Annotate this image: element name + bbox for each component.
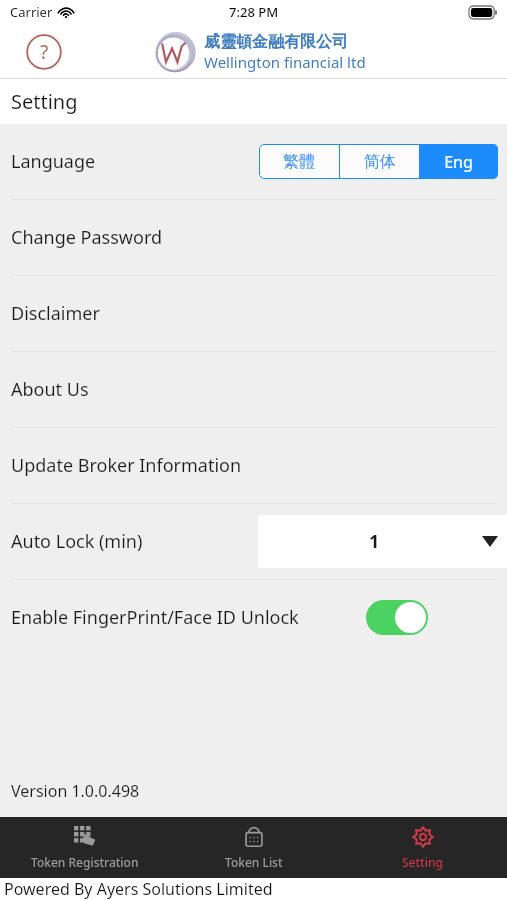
staticText: Carrier [10, 3, 53, 21]
staticText: 威靈頓金融有限公司 [204, 32, 348, 52]
button[interactable]: Disclaimer [0, 276, 507, 351]
staticText: Enable FingerPrint/Face ID Unlock [11, 605, 299, 630]
staticText: Disclaimer [11, 301, 100, 326]
button[interactable]: Enable FingerPrint or Face ID Unlock [366, 600, 428, 635]
button[interactable]: Help [26, 34, 62, 70]
staticText: Update Broker Information [11, 453, 242, 478]
button[interactable]: Update Broker Information [0, 428, 507, 503]
button[interactable]: 简体 [340, 144, 419, 179]
button[interactable]: 1 [258, 515, 507, 568]
staticText: Setting [11, 88, 78, 115]
staticText: Setting [402, 854, 443, 870]
staticText: 7:28 PM [229, 3, 279, 21]
button[interactable]: Setting [338, 817, 507, 878]
button[interactable]: Token List [169, 817, 338, 878]
staticText: Powered By Ayers Solutions Limited [4, 878, 273, 900]
staticText: About Us [11, 377, 89, 402]
staticText: Change Password [11, 225, 163, 250]
button[interactable]: Token Registration [0, 817, 169, 878]
staticText: 繁體 [283, 152, 315, 172]
button[interactable]: Eng [419, 144, 498, 179]
staticText: 简体 [364, 152, 396, 172]
staticText: Language [11, 149, 96, 174]
button[interactable]: About Us [0, 352, 507, 427]
staticText: 1 [369, 529, 380, 554]
staticText: Eng [444, 151, 473, 173]
staticText: Token Registration [31, 854, 139, 870]
staticText: ? [40, 39, 49, 65]
staticText: Version 1.0.0.498 [11, 780, 140, 802]
staticText: Token List [225, 854, 283, 870]
staticText: Wellington financial ltd [204, 52, 366, 72]
staticText: Auto Lock (min) [11, 529, 143, 554]
button[interactable]: Change Password [0, 200, 507, 275]
button[interactable]: 繁體 [259, 144, 339, 179]
